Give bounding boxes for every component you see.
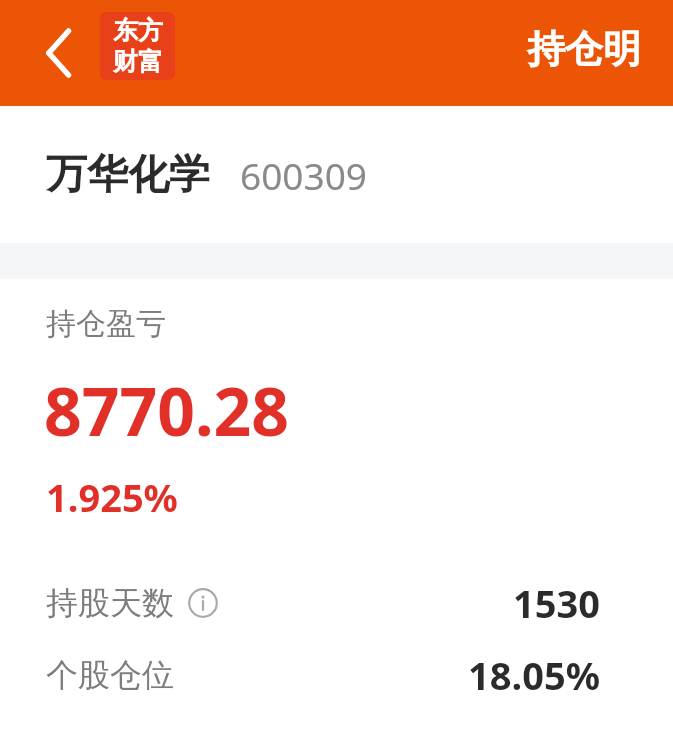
staticText: 财富: [113, 46, 163, 77]
button[interactable]: 万华化学: [0, 106, 673, 243]
staticText: 持仓盈亏: [46, 305, 166, 343]
staticText: 万华化学: [46, 149, 210, 201]
staticText: 持股天数: [46, 583, 174, 623]
button[interactable]: 个股仓位: [0, 639, 673, 711]
staticText: 1530: [513, 577, 600, 629]
staticText: 600309: [240, 150, 367, 200]
staticText: 1.925%: [46, 471, 178, 523]
staticText: 东方: [113, 15, 163, 46]
button[interactable]: Info about holding days: [186, 586, 220, 620]
staticText: 持仓明: [527, 25, 641, 73]
staticText: 个股仓位: [46, 655, 174, 695]
button[interactable]: 持股天数: [0, 567, 673, 639]
staticText: 18.05%: [468, 649, 600, 701]
staticText: 8770.28: [44, 365, 290, 455]
button[interactable]: East Money logo: [100, 12, 175, 80]
button[interactable]: Back: [26, 20, 92, 86]
